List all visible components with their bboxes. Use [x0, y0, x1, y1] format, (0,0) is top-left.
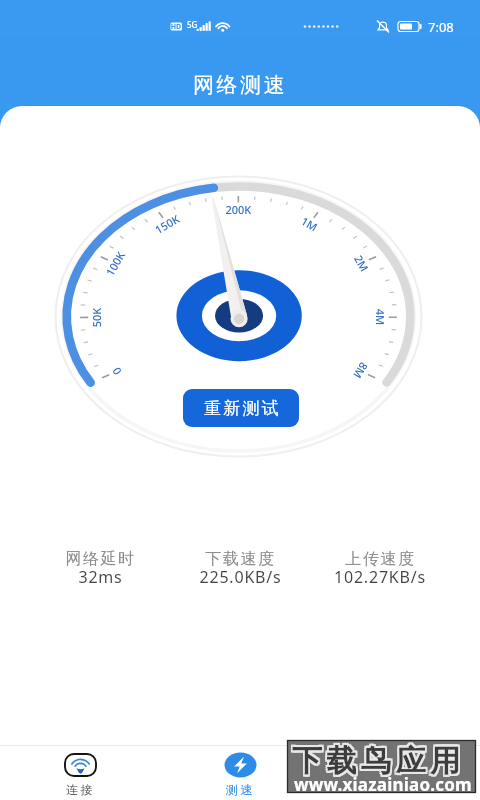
button[interactable]: 连接: [0, 746, 160, 800]
staticText: 上传速度: [345, 549, 416, 569]
staticText: 重新测试: [204, 398, 281, 419]
staticText: 102.27KB/s: [334, 566, 426, 588]
button[interactable]: 测速: [160, 746, 320, 800]
staticText: 网络测速: [193, 72, 288, 98]
other: 连接: [64, 753, 97, 777]
staticText: 225.0KB/s: [199, 566, 282, 588]
staticText: 连接: [66, 782, 96, 797]
other: 测速: [224, 753, 257, 777]
staticText: 测速: [226, 782, 256, 797]
staticText: 下载速度: [205, 549, 276, 569]
staticText: 网络延时: [65, 549, 136, 569]
staticText: 32ms: [78, 566, 123, 588]
button[interactable]: 重新测试: [183, 389, 299, 427]
